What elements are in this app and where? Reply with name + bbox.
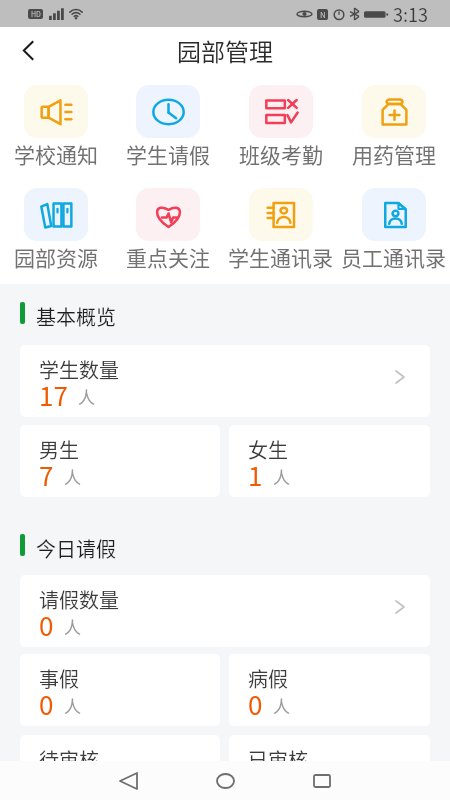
button[interactable]: 学生通讯录 — [224, 188, 337, 271]
button[interactable]: 已审核 — [229, 735, 430, 800]
staticText: 1 — [248, 456, 263, 490]
staticText: 基本概览 — [36, 302, 116, 331]
staticText: 班级考勤 — [239, 139, 323, 169]
button[interactable]: 学生请假 — [112, 85, 224, 168]
button[interactable]: 用药管理 — [337, 85, 450, 168]
staticText: 男生 — [39, 435, 79, 461]
staticText: 人 — [64, 614, 81, 639]
staticText: 学生请假 — [126, 139, 210, 169]
button[interactable]: 女生 — [229, 425, 430, 497]
staticText: 17 — [39, 376, 68, 410]
staticText: 人 — [64, 464, 81, 489]
staticText: N — [320, 9, 326, 20]
staticText: 重点关注 — [126, 242, 210, 272]
staticText: 0 — [39, 606, 54, 640]
button[interactable]: Back — [100, 761, 157, 800]
staticText: 病假 — [248, 664, 288, 690]
staticText: 已审核 — [248, 745, 308, 771]
button[interactable]: 病假 — [229, 654, 430, 726]
staticText: HD — [31, 9, 41, 19]
button[interactable]: Recents — [293, 761, 350, 800]
button[interactable]: 员工通讯录 — [337, 188, 450, 271]
button[interactable]: 请假数量 — [20, 575, 430, 647]
button[interactable]: 班级考勤 — [224, 85, 337, 168]
staticText: 7 — [39, 456, 54, 490]
button[interactable]: 学校通知 — [0, 85, 112, 168]
staticText: 人 — [273, 464, 290, 489]
staticText: 0 — [248, 685, 263, 719]
staticText: 女生 — [248, 435, 288, 461]
button[interactable]: Back — [0, 27, 56, 74]
staticText: 3:13 — [393, 1, 428, 27]
staticText: 待审核 — [39, 745, 99, 771]
button[interactable]: 学生数量 — [20, 345, 430, 417]
staticText: 人 — [64, 693, 81, 718]
staticText: 请假数量 — [39, 585, 119, 611]
staticText: 人 — [78, 384, 95, 409]
staticText: 学校通知 — [14, 139, 98, 169]
staticText: 0 — [39, 685, 54, 719]
button[interactable]: 待审核 — [20, 735, 220, 800]
staticText: 园部管理 — [177, 33, 273, 68]
staticText: 园部资源 — [14, 242, 98, 272]
staticText: 人 — [273, 693, 290, 718]
button[interactable]: 重点关注 — [112, 188, 224, 271]
button[interactable]: 园部资源 — [0, 188, 112, 271]
staticText: 学生通讯录 — [228, 242, 333, 272]
staticText: 学生数量 — [39, 355, 119, 381]
staticText: 今日请假 — [36, 534, 116, 563]
staticText: 用药管理 — [352, 139, 436, 169]
button[interactable]: Home — [197, 761, 254, 800]
staticText: 员工通讯录 — [341, 242, 446, 272]
button[interactable]: 事假 — [20, 654, 220, 726]
staticText: 事假 — [39, 664, 79, 690]
button[interactable]: 男生 — [20, 425, 220, 497]
